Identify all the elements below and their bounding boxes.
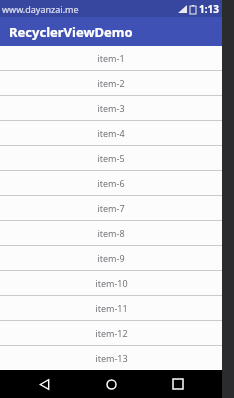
button[interactable]: item-13 (0, 346, 222, 370)
button[interactable]: item-7 (0, 196, 222, 220)
staticText: item-9 (97, 252, 125, 264)
button[interactable]: Back (21, 370, 67, 398)
button[interactable]: item-1 (0, 46, 222, 70)
staticText: item-3 (97, 102, 125, 114)
staticText: item-2 (97, 77, 125, 89)
button[interactable]: item-5 (0, 146, 222, 170)
staticText: item-8 (97, 227, 125, 239)
button[interactable]: item-9 (0, 246, 222, 270)
button[interactable]: RecyclerViewDemo (0, 17, 222, 46)
button[interactable]: Recent apps (155, 370, 201, 398)
staticText: item-10 (95, 277, 128, 289)
button[interactable]: item-12 (0, 321, 222, 345)
staticText: item-1 (97, 52, 125, 64)
staticText: item-13 (95, 352, 128, 364)
button[interactable]: item-8 (0, 221, 222, 245)
staticText: 1:13 (199, 2, 219, 16)
button[interactable]: Home (88, 370, 134, 398)
staticText: www.dayanzai.me (2, 3, 79, 15)
button[interactable]: item-10 (0, 271, 222, 295)
button[interactable]: item-11 (0, 296, 222, 320)
button[interactable]: item-6 (0, 171, 222, 195)
staticText: RecyclerViewDemo (9, 23, 133, 41)
button[interactable]: item-3 (0, 96, 222, 120)
staticText: item-6 (97, 177, 125, 189)
staticText: item-4 (97, 127, 125, 139)
staticText: item-11 (95, 302, 128, 314)
staticText: item-7 (97, 202, 125, 214)
staticText: item-5 (97, 152, 125, 164)
button[interactable]: item-4 (0, 121, 222, 145)
button[interactable]: item-2 (0, 71, 222, 95)
staticText: item-12 (95, 327, 128, 339)
